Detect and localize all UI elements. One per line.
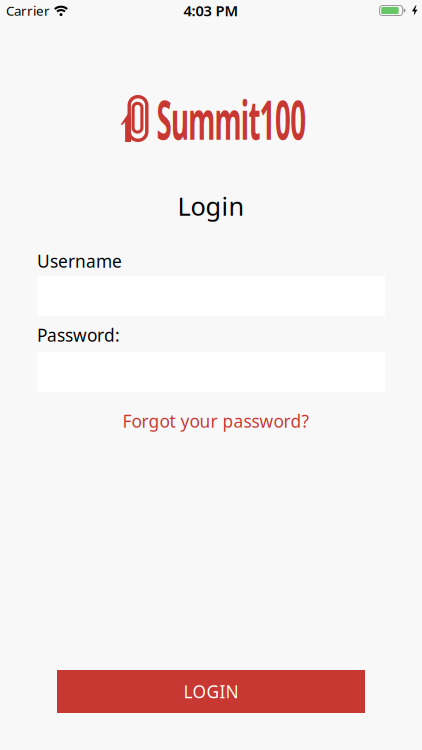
staticText: LOGIN <box>183 680 238 703</box>
staticText: 4:03 PM <box>183 1 238 20</box>
staticText: Login <box>177 189 244 223</box>
staticText: Forgot your password? <box>122 409 309 432</box>
button[interactable]: LOGIN <box>57 670 365 713</box>
staticText: Summit100 <box>87 84 375 154</box>
button[interactable]: Forgot your password? <box>117 410 304 432</box>
staticText: Carrier <box>6 2 50 19</box>
staticText: Username <box>37 249 122 272</box>
staticText: Password: <box>37 323 120 346</box>
